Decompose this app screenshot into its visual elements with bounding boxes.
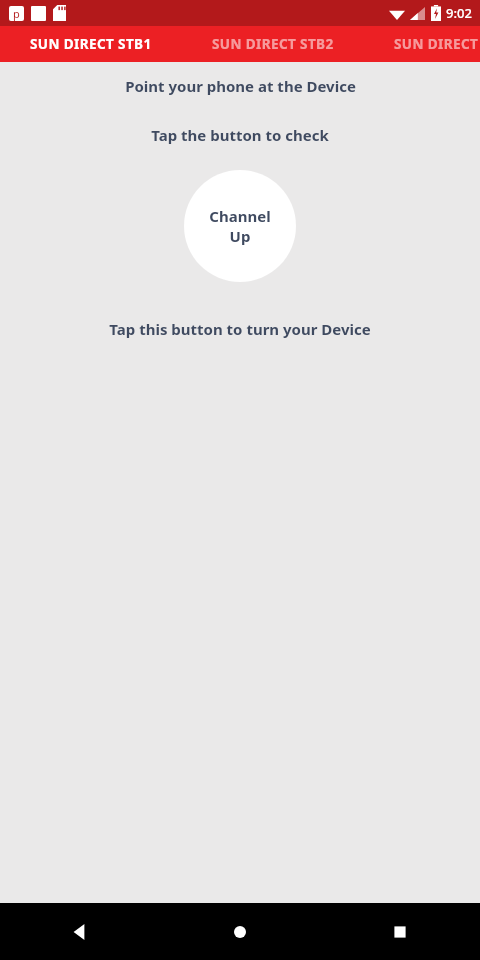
staticText: Point your phone at the Device	[125, 76, 356, 96]
staticText: SUN DIRECT STB2	[212, 35, 334, 53]
button[interactable]: Recent apps	[320, 903, 480, 960]
button[interactable]: Channel Up	[184, 170, 296, 282]
button[interactable]: SUN DIRECT STB2	[182, 26, 364, 62]
staticText: 9:02	[446, 4, 472, 22]
staticText: SUN DIRECT STB3	[394, 35, 480, 53]
staticText: SUN DIRECT STB1	[30, 35, 152, 53]
button[interactable]: SUN DIRECT STB3	[364, 26, 480, 62]
button[interactable]: Back	[0, 903, 160, 960]
staticText: Tap this button to turn your Device	[109, 319, 371, 339]
staticText: Channel Up	[209, 206, 271, 246]
button[interactable]: SUN DIRECT STB1	[0, 26, 182, 62]
button[interactable]: Home	[160, 903, 320, 960]
staticText: Tap the button to check	[151, 125, 329, 145]
staticText: p	[13, 6, 20, 21]
